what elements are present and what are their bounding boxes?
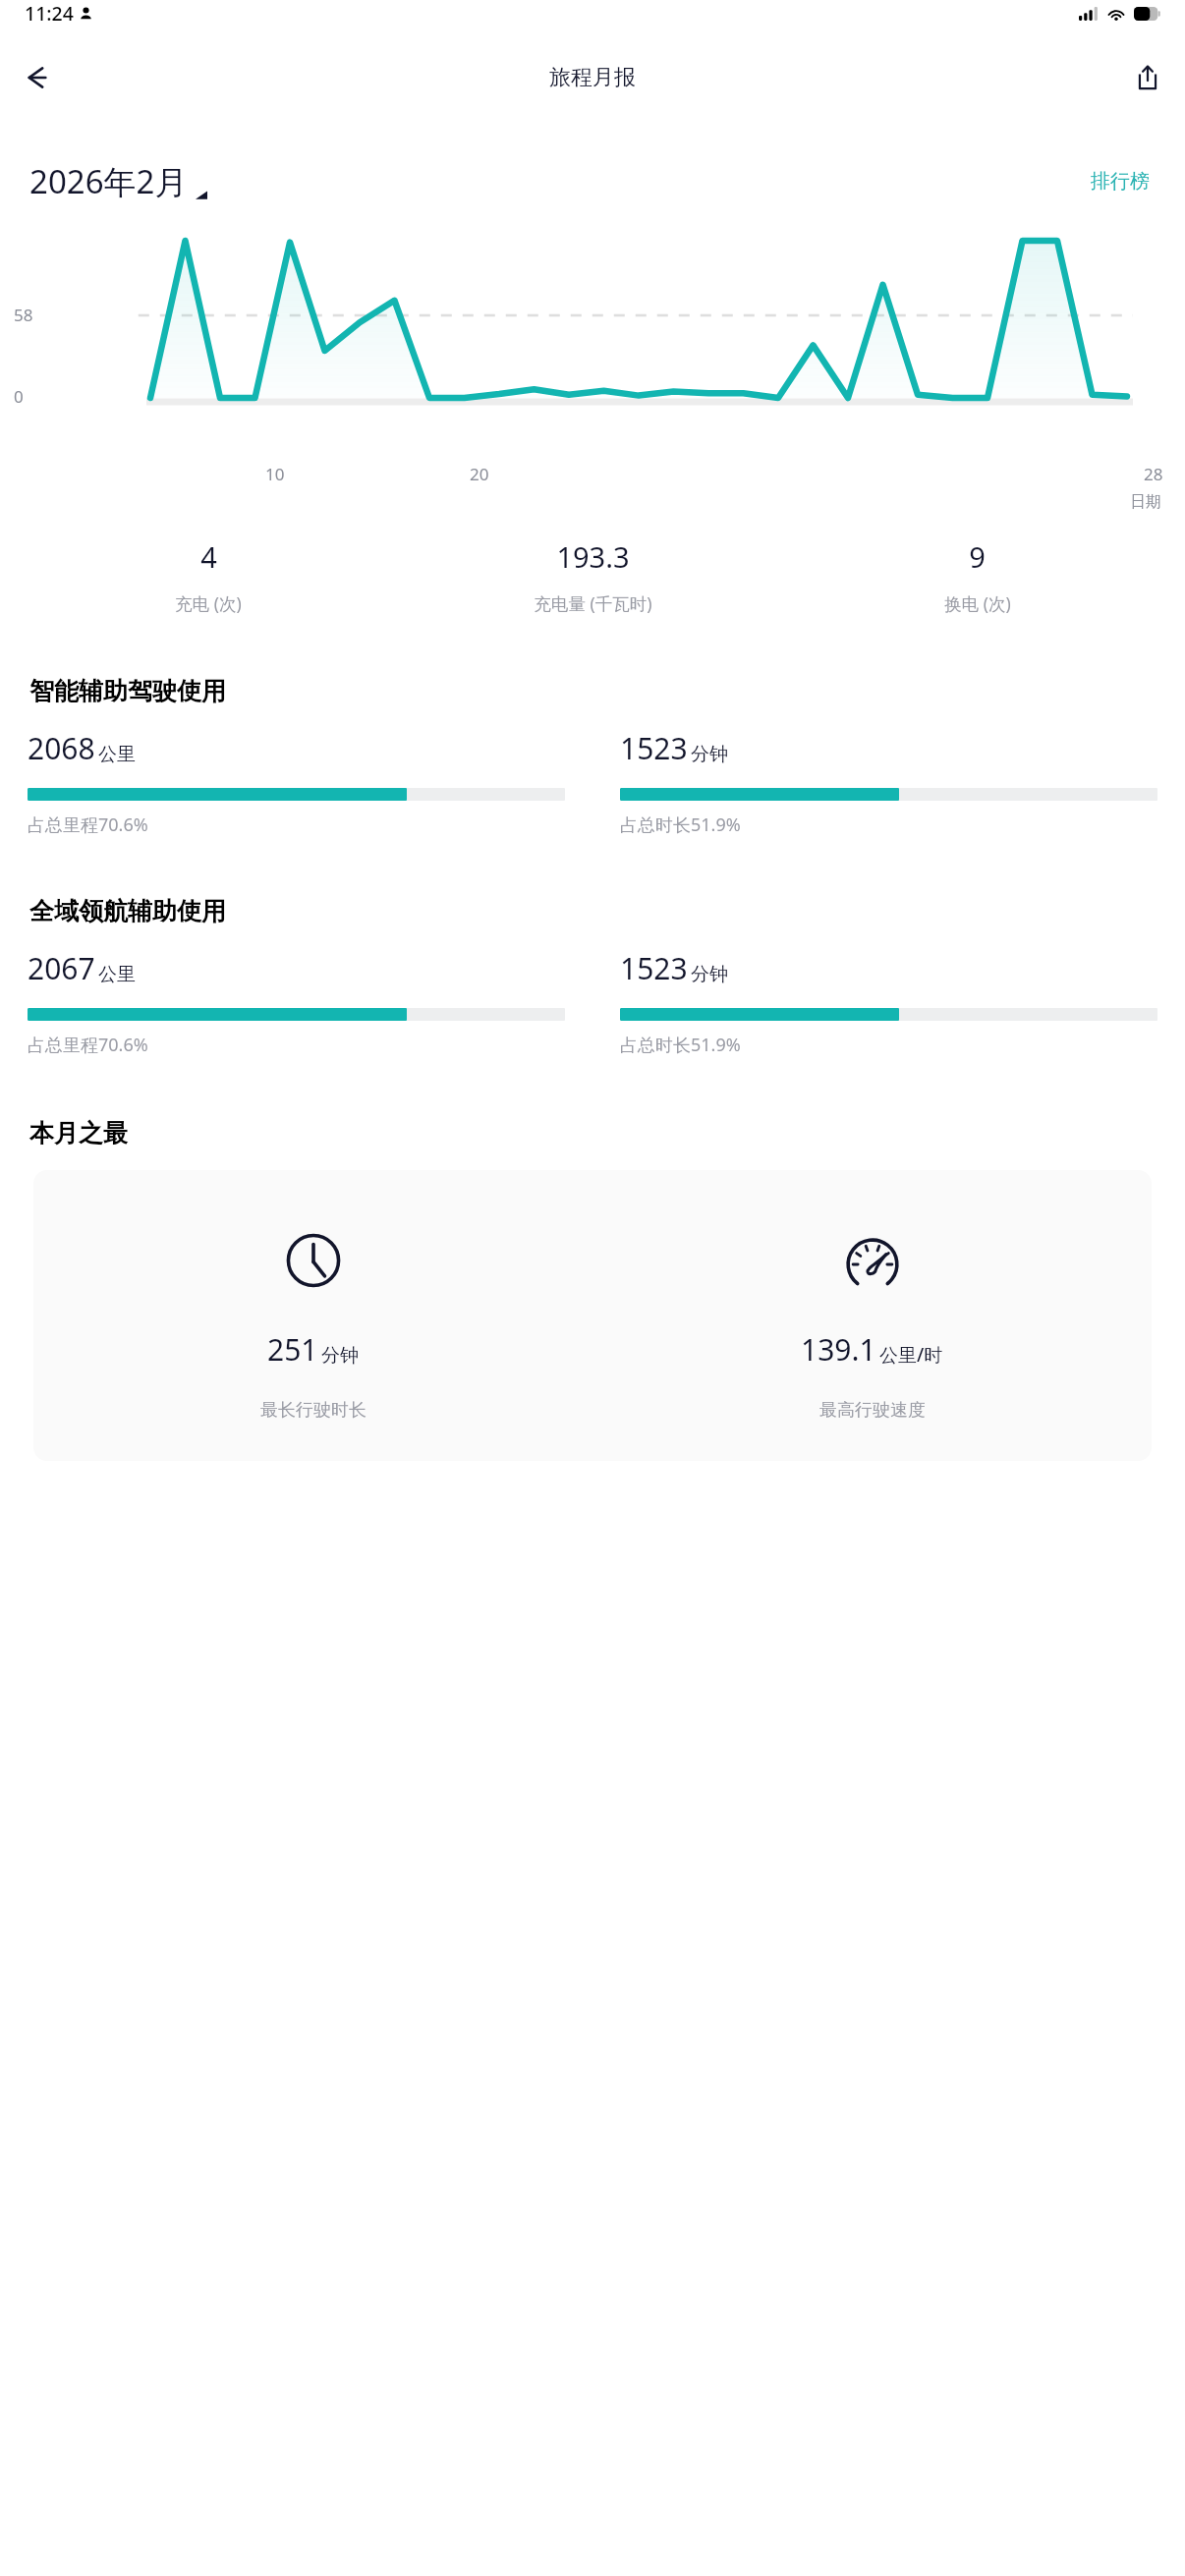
staticText: 4 xyxy=(200,537,217,576)
staticText: 换电 (次) xyxy=(944,591,1011,615)
staticText: 1523 xyxy=(620,728,688,768)
staticText: 1523 xyxy=(620,948,688,988)
button[interactable]: 2067 xyxy=(28,948,565,1057)
staticText: 充电量 (千瓦时) xyxy=(534,591,652,615)
button[interactable]: 251 xyxy=(33,1170,1152,1461)
staticText: 智能辅助驾驶使用 xyxy=(29,676,226,706)
staticText: 公里 xyxy=(98,963,136,986)
staticText: 11:24 xyxy=(25,0,74,27)
staticText: 公里/时 xyxy=(879,1342,943,1368)
staticText: 0 xyxy=(14,385,24,408)
staticText: 日期 xyxy=(1130,492,1161,512)
button[interactable]: 2068 xyxy=(28,728,565,837)
staticText: 旅程月报 xyxy=(549,64,636,91)
staticText: 67 xyxy=(1139,17,1152,31)
staticText: 排行榜 xyxy=(1091,169,1150,194)
staticText: 20 xyxy=(470,463,489,485)
staticText: 193.3 xyxy=(556,537,630,576)
staticText: 公里 xyxy=(98,743,136,766)
button[interactable]: 排行榜 xyxy=(1085,163,1156,199)
staticText: 全域领航辅助使用 xyxy=(29,896,226,926)
staticText: 占总里程70.6% xyxy=(28,812,148,837)
staticText: 251 xyxy=(267,1329,318,1370)
staticText: 最高行驶速度 xyxy=(819,1399,926,1422)
staticText: 分钟 xyxy=(691,743,728,766)
button[interactable]: 9 xyxy=(785,537,1169,615)
button[interactable]: 2026年2月 xyxy=(29,159,207,203)
button[interactable]: 1523 xyxy=(620,948,1157,1057)
staticText: 2026年2月 xyxy=(29,159,188,203)
staticText: 占总里程70.6% xyxy=(28,1033,148,1057)
staticText: 139.1 xyxy=(801,1329,876,1370)
staticText: 分钟 xyxy=(321,1344,359,1368)
button[interactable]: 193.3 xyxy=(401,537,785,615)
button[interactable]: Back xyxy=(10,50,65,105)
staticText: 28 xyxy=(1144,463,1163,485)
button[interactable]: Share xyxy=(1120,50,1175,105)
staticText: 最长行驶时长 xyxy=(260,1399,367,1422)
staticText: 58 xyxy=(14,304,33,326)
staticText: 2067 xyxy=(28,948,95,988)
staticText: 10 xyxy=(265,463,285,485)
staticText: 9 xyxy=(969,537,986,576)
staticText: 本月之最 xyxy=(29,1118,128,1148)
staticText: 占总时长51.9% xyxy=(620,1033,741,1057)
staticText: 充电 (次) xyxy=(175,591,242,615)
staticText: 分钟 xyxy=(691,963,728,986)
staticText: 占总时长51.9% xyxy=(620,812,741,837)
button[interactable]: 1523 xyxy=(620,728,1157,837)
button[interactable]: 4 xyxy=(16,537,401,615)
staticText: 2068 xyxy=(28,728,95,768)
